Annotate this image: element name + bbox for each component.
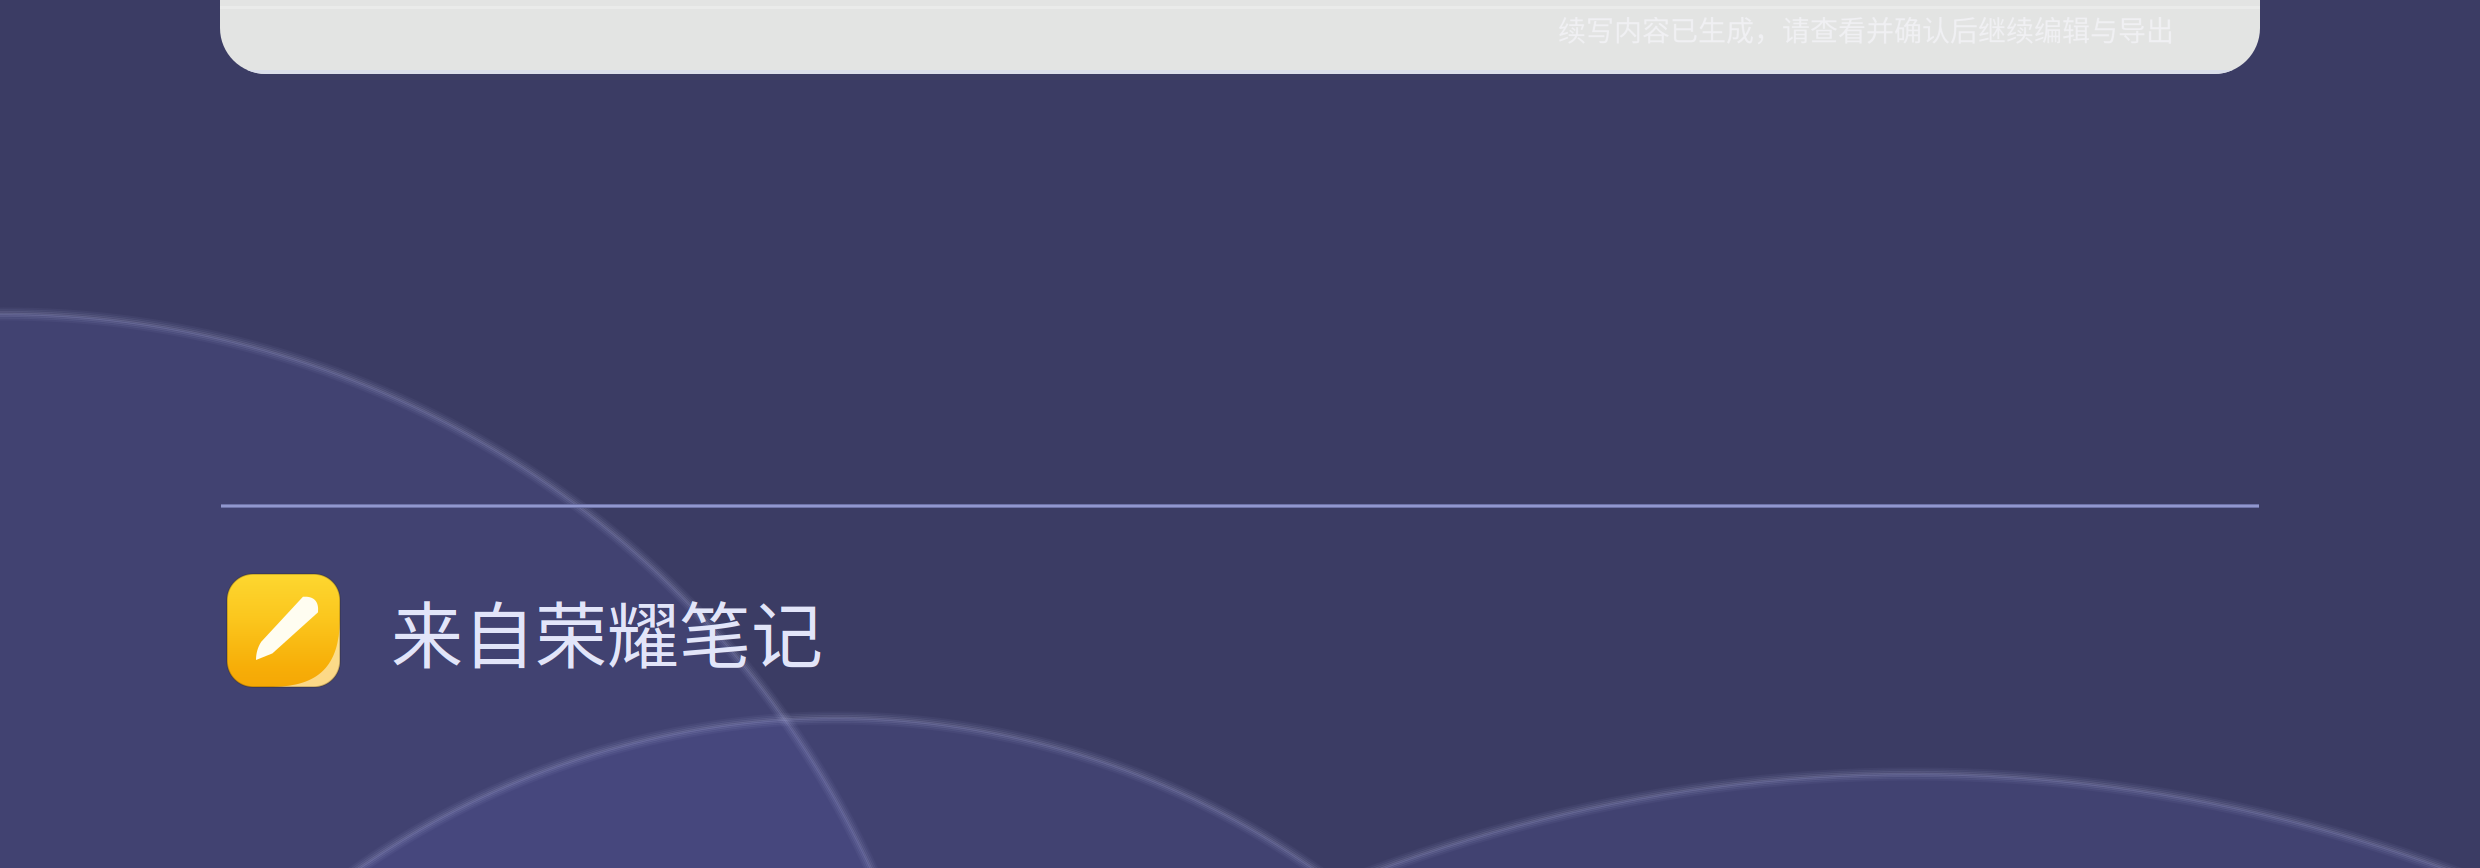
- button[interactable]: 来自荣耀笔记: [227, 574, 2253, 687]
- staticText: 续写内容已生成，请查看并确认后继续编辑与导出: [1558, 9, 2174, 49]
- staticText: 来自荣耀笔记: [391, 578, 823, 683]
